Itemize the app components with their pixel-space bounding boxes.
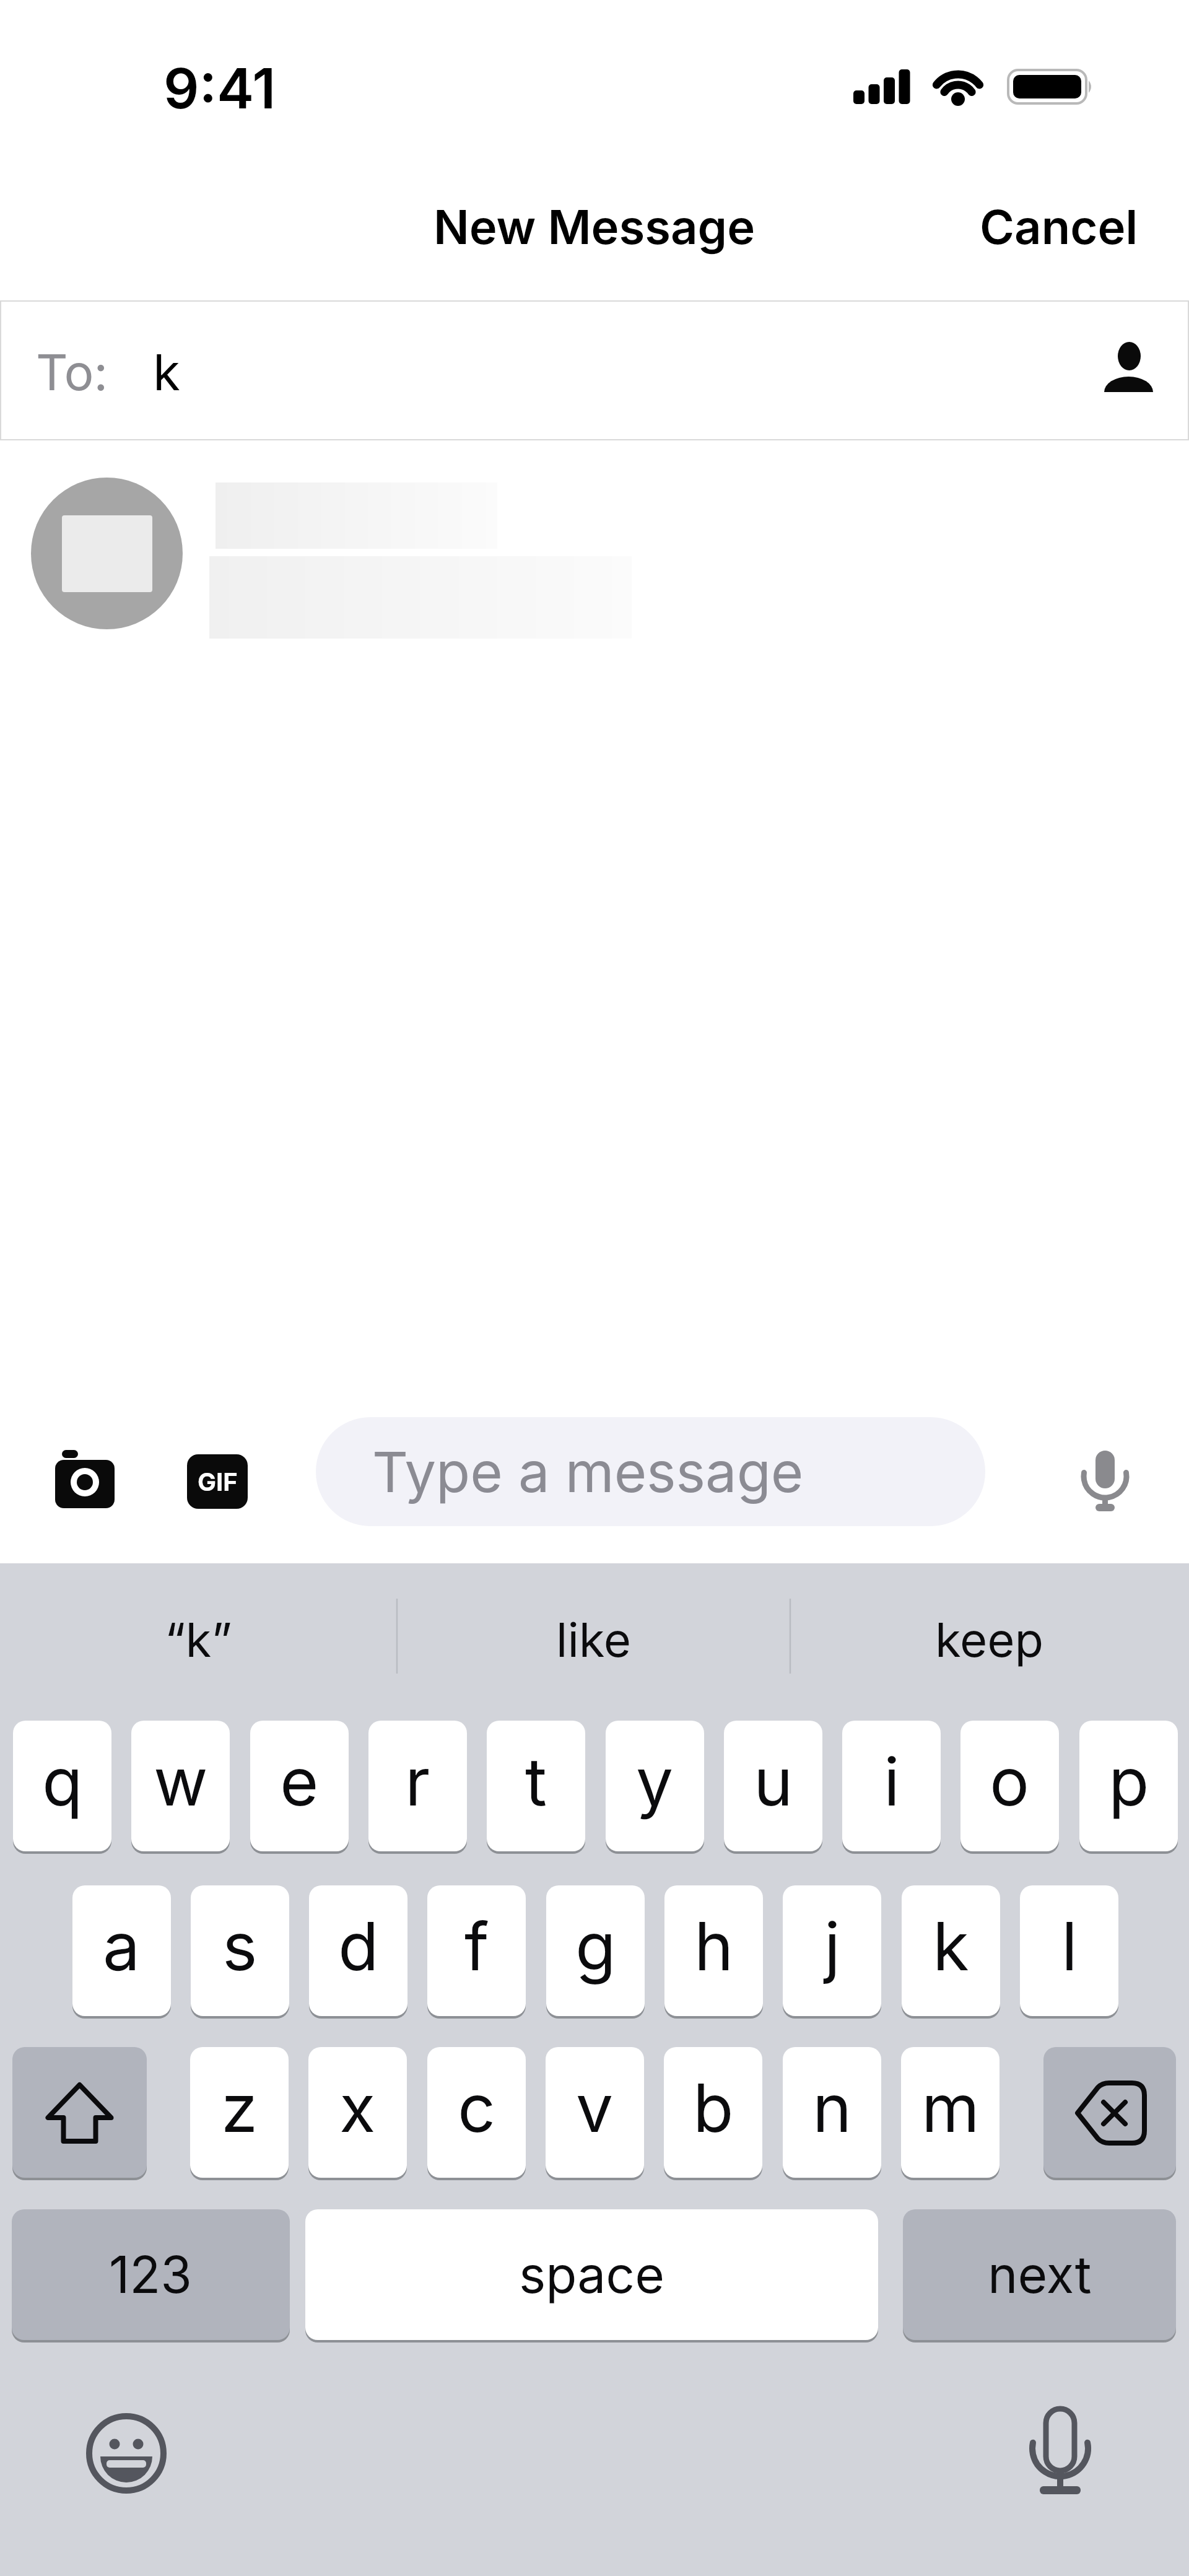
button[interactable]: Cancel [966,197,1152,256]
staticText: r [405,1741,430,1821]
staticText: g [575,1906,616,1986]
staticText: d [338,1906,379,1986]
staticText: y [636,1741,674,1821]
staticText: keep [935,1611,1044,1668]
button[interactable] [1075,1443,1137,1517]
staticText: “k” [165,1611,232,1668]
staticText: x [339,2067,376,2147]
button[interactable]: i [842,1721,941,1851]
staticText: a [103,1906,141,1986]
button[interactable]: y [606,1721,704,1851]
button[interactable] [1096,334,1164,409]
button[interactable]: space [305,2209,878,2340]
staticText: next [988,2244,1092,2305]
staticText: t [525,1741,547,1821]
button[interactable]: c [427,2047,526,2178]
button[interactable]: z [190,2047,289,2178]
button[interactable]: l [1020,1885,1118,2016]
button[interactable] [1029,2403,1091,2502]
button[interactable]: p [1079,1721,1178,1851]
staticText: b [693,2067,734,2147]
staticText: To: [36,342,108,402]
staticText: Cancel [980,198,1138,255]
button[interactable]: 123 [12,2209,290,2340]
button[interactable] [12,2047,147,2178]
staticText: m [921,2067,980,2147]
button[interactable]: “k” [0,1605,397,1674]
staticText: e [280,1741,319,1821]
button[interactable] [1043,2047,1176,2178]
staticText: j [824,1906,840,1986]
staticText: space [519,2244,664,2305]
staticText: k [153,342,180,402]
staticText: o [990,1741,1030,1821]
button[interactable]: GIF [187,1454,248,1509]
button[interactable]: r [368,1721,467,1851]
button[interactable]: a [72,1885,171,2016]
staticText: z [221,2067,258,2147]
staticText: w [154,1741,208,1821]
staticText: Type a message [372,1438,804,1506]
button[interactable] [50,1443,124,1517]
button[interactable]: f [427,1885,526,2016]
staticText: q [42,1741,83,1821]
button[interactable]: h [664,1885,763,2016]
staticText: h [694,1906,734,1986]
button[interactable]: u [724,1721,822,1851]
staticText: New Message [433,198,756,255]
staticText: n [812,2067,852,2147]
button[interactable]: m [901,2047,1000,2178]
button[interactable]: like [397,1605,790,1674]
button[interactable]: b [664,2047,762,2178]
staticText: 9:41 [163,55,276,116]
button[interactable]: n [783,2047,881,2178]
staticText: u [754,1741,793,1821]
button[interactable]: o [960,1721,1059,1851]
button[interactable]: d [309,1885,407,2016]
button[interactable]: keep [790,1605,1189,1674]
button[interactable]: x [308,2047,407,2178]
staticText: v [576,2067,614,2147]
button[interactable] [31,478,183,629]
staticText: GIF [198,1467,238,1496]
button[interactable]: t [487,1721,585,1851]
button[interactable]: j [783,1885,881,2016]
button[interactable]: e [250,1721,349,1851]
button[interactable]: w [131,1721,230,1851]
staticText: p [1108,1741,1149,1821]
staticText: 123 [109,2244,193,2305]
button[interactable]: s [191,1885,289,2016]
button[interactable]: v [546,2047,644,2178]
staticText: s [222,1906,258,1986]
staticText: l [1061,1906,1078,1986]
staticText: i [884,1741,900,1821]
button[interactable]: g [546,1885,645,2016]
button[interactable]: next [903,2209,1176,2340]
button[interactable] [83,2410,170,2497]
button[interactable]: q [13,1721,111,1851]
staticText: k [933,1906,969,1986]
button[interactable]: Type a message [316,1417,985,1526]
button[interactable]: k [902,1885,1000,2016]
staticText: like [556,1611,632,1668]
staticText: c [458,2067,496,2147]
staticText: f [464,1906,489,1986]
button[interactable] [0,300,1189,440]
